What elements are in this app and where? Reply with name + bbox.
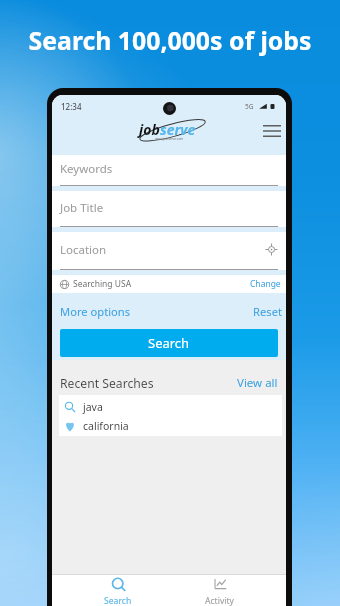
button[interactable]: california (59, 417, 282, 434)
staticText: Location (60, 242, 107, 258)
staticText: Change (250, 278, 281, 290)
staticText: 5G (245, 102, 254, 111)
button[interactable]: Keywords (52, 155, 286, 186)
button[interactable]: Location (52, 232, 286, 270)
staticText: serve (160, 120, 196, 139)
button[interactable]: Search (100, 575, 136, 606)
staticText: 12:34 (61, 101, 82, 112)
button[interactable]: Job Title (52, 191, 286, 227)
staticText: Activity (205, 595, 235, 606)
button[interactable]: More options (60, 304, 131, 319)
button[interactable]: Activity (202, 575, 238, 606)
staticText: Job Title (60, 200, 104, 216)
staticText: Search (104, 595, 132, 606)
staticText: california (83, 419, 129, 433)
button[interactable]: View all (237, 375, 278, 391)
staticText: job (139, 120, 160, 139)
button[interactable]: Searching USA (52, 275, 286, 293)
button[interactable]: Search (60, 329, 278, 357)
staticText: Keywords (60, 161, 113, 177)
button[interactable]: Reset (253, 304, 282, 319)
staticText: Recent Searches (60, 375, 154, 392)
staticText: Search (148, 334, 190, 352)
staticText: Searching USA (73, 278, 132, 290)
button[interactable]: Menu (258, 119, 286, 142)
staticText: Search 100,000s of jobs (0, 23, 340, 57)
staticText: java (83, 400, 103, 414)
staticText: www.jobserve.com (155, 137, 184, 141)
button[interactable]: java (59, 398, 282, 415)
